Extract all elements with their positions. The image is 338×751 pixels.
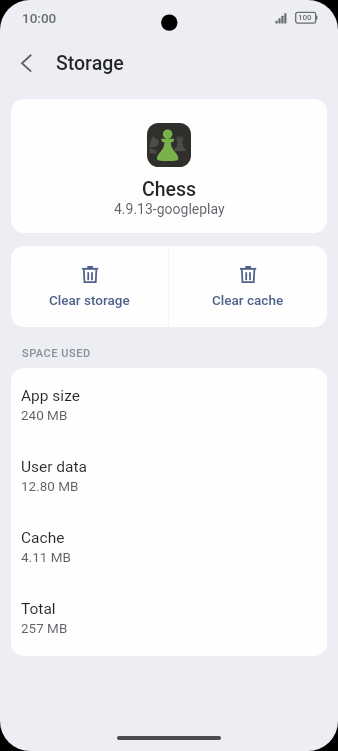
button[interactable]: Clear storage <box>11 246 168 327</box>
staticText: App size <box>21 387 80 405</box>
staticText: 240 MB <box>21 407 68 423</box>
staticText: 257 MB <box>21 620 68 636</box>
staticText: Clear storage <box>49 292 130 308</box>
staticText: Chess <box>142 178 197 201</box>
staticText: 100 <box>298 13 312 22</box>
button[interactable]: Total <box>11 581 327 652</box>
staticText: SPACE USED <box>22 347 91 360</box>
staticText: 4.9.13-googleplay <box>114 201 225 217</box>
staticText: User data <box>21 458 88 476</box>
staticText: 12.80 MB <box>21 478 79 494</box>
staticText: 10:00 <box>22 10 57 26</box>
staticText: Storage <box>56 52 124 75</box>
staticText: Cache <box>21 529 65 547</box>
button[interactable]: Clear cache <box>169 246 327 327</box>
staticText: Clear cache <box>212 292 284 308</box>
staticText: Total <box>21 600 56 618</box>
button[interactable]: User data <box>11 439 327 510</box>
button[interactable]: Back <box>9 45 45 81</box>
button[interactable]: Cache <box>11 510 327 581</box>
button[interactable]: App size <box>11 368 327 439</box>
staticText: 4.11 MB <box>21 549 71 565</box>
